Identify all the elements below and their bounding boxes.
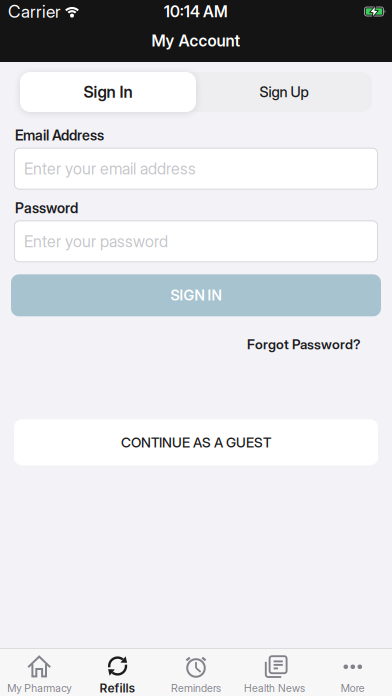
staticText: Reminders [171, 682, 221, 694]
staticText: Carrier [8, 1, 61, 22]
staticText: Enter your email address [24, 159, 196, 178]
staticText: Refills [100, 681, 136, 695]
staticText: Sign In [83, 83, 132, 101]
button[interactable]: Sign In [20, 72, 196, 112]
button[interactable]: Sign Up [196, 72, 372, 112]
staticText: Email Address [15, 127, 104, 144]
staticText: Forgot Password? [247, 336, 361, 352]
button[interactable]: Health News [235, 655, 314, 694]
button[interactable]: More [314, 655, 392, 694]
button[interactable]: My Pharmacy [0, 655, 78, 694]
staticText: CONTINUE AS A GUEST [121, 434, 271, 450]
staticText: More [341, 682, 365, 694]
staticText: Sign Up [259, 83, 308, 100]
staticText: My Account [151, 31, 240, 50]
staticText: 10:14 AM [164, 2, 228, 21]
staticText: Health News [244, 682, 305, 694]
button[interactable]: Reminders [157, 655, 235, 694]
button[interactable]: SIGN IN [11, 274, 381, 316]
button[interactable]: CONTINUE AS A GUEST [14, 419, 378, 465]
staticText: SIGN IN [170, 287, 221, 304]
staticText: Enter your password [24, 232, 168, 251]
staticText: Password [15, 200, 78, 216]
button[interactable]: Refills [78, 654, 157, 695]
button[interactable]: Forgot Password? [247, 336, 361, 352]
staticText: My Pharmacy [7, 682, 71, 694]
